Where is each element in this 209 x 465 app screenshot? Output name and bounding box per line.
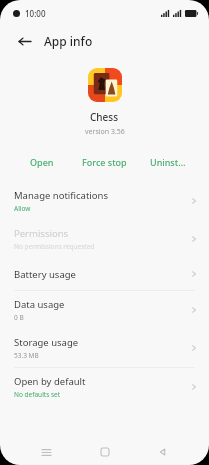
staticText: Uninst… (150, 156, 186, 168)
button[interactable]: Open by default (0, 368, 209, 406)
button[interactable]: Storage usage (0, 329, 209, 367)
button[interactable]: Battery usage (0, 258, 209, 290)
staticText: 10:00 (25, 8, 46, 19)
button[interactable]: Manage notifications (0, 182, 209, 220)
staticText: Chess (90, 110, 119, 124)
staticText: App info (44, 33, 93, 49)
staticText: Permissions (14, 227, 69, 240)
staticText: Data usage (14, 298, 65, 311)
staticText: No permissions requested (14, 242, 95, 251)
button[interactable]: Permissions (0, 220, 209, 258)
staticText: Open (30, 156, 54, 168)
staticText: Open by default (14, 375, 86, 388)
button[interactable]: Back (13, 30, 35, 52)
staticText: Force stop (82, 156, 127, 168)
staticText: Allow (14, 204, 31, 213)
staticText: No defaults set (14, 390, 61, 399)
button[interactable]: Open (10, 151, 73, 173)
button[interactable]: Uninst… (136, 151, 199, 173)
staticText: 0 B (14, 313, 24, 322)
button[interactable]: Back (151, 440, 175, 464)
button[interactable]: Recent apps (34, 440, 58, 464)
staticText: Battery usage (14, 268, 76, 281)
staticText: version 3.56 (85, 127, 125, 137)
button[interactable]: Force stop (73, 151, 136, 173)
button[interactable]: Data usage (0, 291, 209, 329)
staticText: Manage notifications (14, 189, 108, 202)
staticText: 53.3 MB (14, 351, 39, 360)
staticText: Storage usage (14, 336, 79, 349)
button[interactable]: Home (93, 440, 117, 464)
